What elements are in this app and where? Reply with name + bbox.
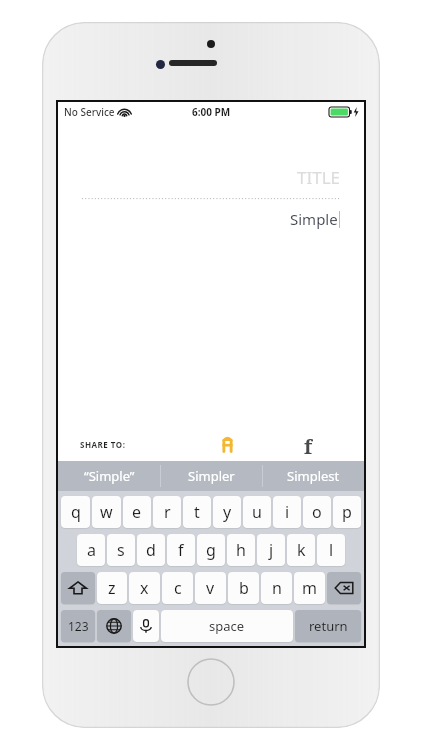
staticText: Simple: [290, 209, 338, 229]
button[interactable]: a: [77, 534, 105, 566]
button[interactable]: Delete: [327, 572, 361, 604]
button[interactable]: q: [61, 496, 90, 528]
button[interactable]: z: [97, 572, 127, 604]
button[interactable]: return: [295, 610, 361, 642]
button[interactable]: Share to Facebook: [297, 433, 319, 455]
button[interactable]: Switch keyboard: [97, 610, 131, 642]
button[interactable]: i: [273, 496, 301, 528]
button[interactable]: o: [303, 496, 331, 528]
staticText: 123: [68, 618, 89, 634]
staticText: p: [342, 501, 352, 523]
staticText: w: [100, 501, 113, 523]
staticText: v: [206, 577, 215, 599]
staticText: l: [329, 539, 334, 561]
staticText: k: [297, 539, 306, 561]
button[interactable]: u: [243, 496, 271, 528]
button[interactable]: x: [129, 572, 160, 604]
button[interactable]: space: [161, 610, 293, 642]
staticText: h: [236, 539, 246, 561]
staticText: “Simple”: [84, 467, 135, 485]
button[interactable]: h: [227, 534, 255, 566]
staticText: i: [285, 501, 290, 523]
staticText: j: [269, 539, 274, 561]
staticText: a: [87, 539, 96, 561]
button[interactable]: y: [213, 496, 241, 528]
button[interactable]: Shift: [61, 572, 95, 604]
staticText: c: [174, 577, 182, 599]
staticText: n: [272, 577, 282, 599]
button[interactable]: p: [333, 496, 361, 528]
button[interactable]: “Simple”: [58, 461, 160, 491]
button[interactable]: s: [107, 534, 135, 566]
button[interactable]: n: [261, 572, 292, 604]
staticText: e: [132, 501, 142, 523]
staticText: f: [304, 433, 313, 455]
staticText: y: [223, 501, 232, 523]
button[interactable]: 123: [61, 610, 95, 642]
button[interactable]: Simpler: [161, 461, 262, 491]
button[interactable]: j: [257, 534, 285, 566]
staticText: g: [206, 539, 216, 561]
button[interactable]: Simplest: [263, 461, 364, 491]
button[interactable]: m: [294, 572, 325, 604]
button[interactable]: w: [92, 496, 121, 528]
staticText: space: [209, 617, 245, 635]
staticText: z: [108, 577, 116, 599]
staticText: Simpler: [188, 467, 235, 485]
button[interactable]: Share to app: [216, 433, 238, 455]
staticText: r: [164, 501, 171, 523]
button[interactable]: c: [162, 572, 193, 604]
button[interactable]: r: [153, 496, 181, 528]
staticText: o: [312, 501, 322, 523]
button[interactable]: d: [137, 534, 165, 566]
staticText: u: [252, 501, 262, 523]
button[interactable]: f: [167, 534, 195, 566]
staticText: q: [71, 501, 81, 523]
button[interactable]: k: [287, 534, 315, 566]
staticText: SHARE TO:: [80, 439, 126, 450]
button[interactable]: v: [195, 572, 226, 604]
button[interactable]: g: [197, 534, 225, 566]
button[interactable]: t: [183, 496, 211, 528]
staticText: TITLE: [58, 166, 340, 189]
staticText: t: [194, 501, 200, 523]
staticText: f: [178, 539, 184, 561]
staticText: s: [117, 539, 125, 561]
staticText: No Service: [64, 105, 115, 119]
staticText: d: [146, 539, 156, 561]
button[interactable]: Dictate: [133, 610, 159, 642]
staticText: m: [302, 577, 317, 599]
staticText: return: [309, 617, 348, 635]
staticText: b: [239, 577, 249, 599]
staticText: 6:00 PM: [192, 105, 231, 119]
staticText: Simplest: [287, 467, 340, 485]
button[interactable]: e: [123, 496, 151, 528]
button[interactable]: l: [317, 534, 345, 566]
staticText: x: [140, 577, 149, 599]
button[interactable]: b: [228, 572, 259, 604]
